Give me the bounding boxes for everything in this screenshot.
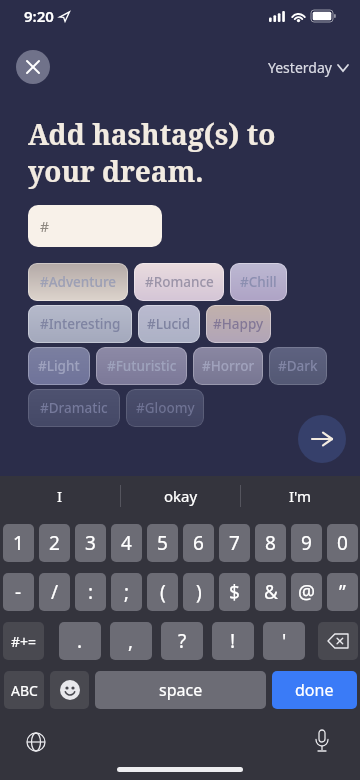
staticText: #Horror	[202, 357, 255, 375]
staticText: !	[230, 628, 236, 654]
staticText: #Gloomy	[136, 399, 195, 417]
staticText: 5	[157, 530, 168, 556]
staticText: done	[295, 679, 334, 701]
button[interactable]	[26, 732, 46, 752]
button[interactable]: /	[39, 573, 70, 611]
button[interactable]: $	[219, 573, 250, 611]
button[interactable]: 0	[327, 524, 358, 562]
button[interactable]: #Dark	[269, 347, 327, 385]
button[interactable]: 9	[291, 524, 322, 562]
button[interactable]: #Horror	[193, 347, 263, 385]
staticText: ABC	[11, 681, 38, 700]
staticText: ;	[124, 579, 130, 605]
staticText: ,	[128, 628, 134, 654]
staticText: #Chill	[240, 273, 277, 291]
staticText: #Happy	[213, 315, 264, 333]
staticText: 3	[85, 530, 96, 556]
button[interactable]	[16, 50, 50, 84]
button[interactable]: (	[147, 573, 178, 611]
staticText: #Adventure	[40, 273, 117, 291]
staticText: 1	[13, 530, 24, 556]
button[interactable]: #Light	[28, 347, 90, 385]
staticText: 9	[301, 530, 312, 556]
staticText: #Romance	[145, 273, 214, 291]
button[interactable]: ;	[111, 573, 142, 611]
staticText: #Futuristic	[107, 357, 177, 375]
button[interactable]: 5	[147, 524, 178, 562]
staticText: Add hashtag(s) to your dream.	[28, 115, 276, 190]
button[interactable]: I	[0, 476, 120, 516]
staticText: #	[40, 217, 50, 236]
staticText: 7	[229, 530, 240, 556]
button[interactable]: #Interesting	[28, 305, 132, 343]
button[interactable]	[298, 415, 346, 463]
button[interactable]: #Romance	[134, 263, 224, 301]
button[interactable]	[50, 671, 89, 709]
button[interactable]: ABC	[4, 671, 44, 709]
button[interactable]: .	[59, 622, 101, 660]
button[interactable]: #+=	[3, 622, 44, 660]
staticText: 9:20	[24, 6, 54, 26]
staticText: I'm	[289, 486, 312, 506]
button[interactable]: !	[212, 622, 254, 660]
staticText: I	[57, 486, 63, 506]
button[interactable]: space	[95, 671, 266, 709]
staticText: -	[15, 579, 22, 605]
staticText: :	[88, 579, 94, 605]
staticText: ”	[339, 579, 346, 605]
staticText: #Dark	[278, 357, 318, 375]
staticText: /	[51, 579, 59, 605]
button[interactable]: 8	[255, 524, 286, 562]
staticText: #Dramatic	[40, 399, 108, 417]
staticText: 8	[265, 530, 276, 556]
button[interactable]: #Futuristic	[96, 347, 187, 385]
staticText: ?	[178, 628, 187, 654]
staticText: Yesterday	[268, 58, 332, 77]
button[interactable]	[312, 730, 332, 754]
button[interactable]: #Adventure	[28, 263, 128, 301]
staticText: 4	[121, 530, 132, 556]
staticText: #Lucid	[147, 315, 191, 333]
button[interactable]: okay	[121, 476, 240, 516]
button[interactable]: ”	[327, 573, 358, 611]
button[interactable]: #Lucid	[138, 305, 200, 343]
staticText: .	[77, 628, 83, 654]
button[interactable]: 3	[75, 524, 106, 562]
staticText: space	[159, 679, 203, 701]
staticText: (	[160, 579, 166, 605]
staticText: #+=	[11, 632, 37, 651]
button[interactable]: #	[28, 205, 162, 247]
button[interactable]: )	[183, 573, 214, 611]
staticText: )	[196, 579, 202, 605]
button[interactable]: 1	[3, 524, 34, 562]
button[interactable]: #Chill	[230, 263, 287, 301]
button[interactable]: Yesterday	[268, 58, 348, 77]
button[interactable]: ?	[161, 622, 203, 660]
button[interactable]: 4	[111, 524, 142, 562]
button[interactable]: ,	[110, 622, 152, 660]
staticText: $	[229, 579, 240, 605]
staticText: &	[264, 579, 278, 605]
button[interactable]: #Dramatic	[28, 389, 120, 427]
button[interactable]: :	[75, 573, 106, 611]
button[interactable]: @	[291, 573, 322, 611]
staticText: #Light	[38, 357, 80, 375]
staticText: 6	[193, 530, 204, 556]
staticText: 0	[337, 530, 348, 556]
button[interactable]: done	[272, 671, 357, 709]
button[interactable]: -	[3, 573, 34, 611]
staticText: 2	[49, 530, 60, 556]
staticText: #Interesting	[40, 315, 121, 333]
button[interactable]: 7	[219, 524, 250, 562]
button[interactable]: #Happy	[206, 305, 271, 343]
button[interactable]: 2	[39, 524, 70, 562]
button[interactable]: #Gloomy	[126, 389, 204, 427]
button[interactable]	[318, 622, 358, 660]
button[interactable]: I'm	[241, 476, 360, 516]
button[interactable]: '	[263, 622, 305, 660]
button[interactable]: &	[255, 573, 286, 611]
staticText: okay	[164, 486, 198, 506]
button[interactable]: 6	[183, 524, 214, 562]
staticText: '	[282, 628, 287, 654]
staticText: @	[298, 579, 316, 605]
